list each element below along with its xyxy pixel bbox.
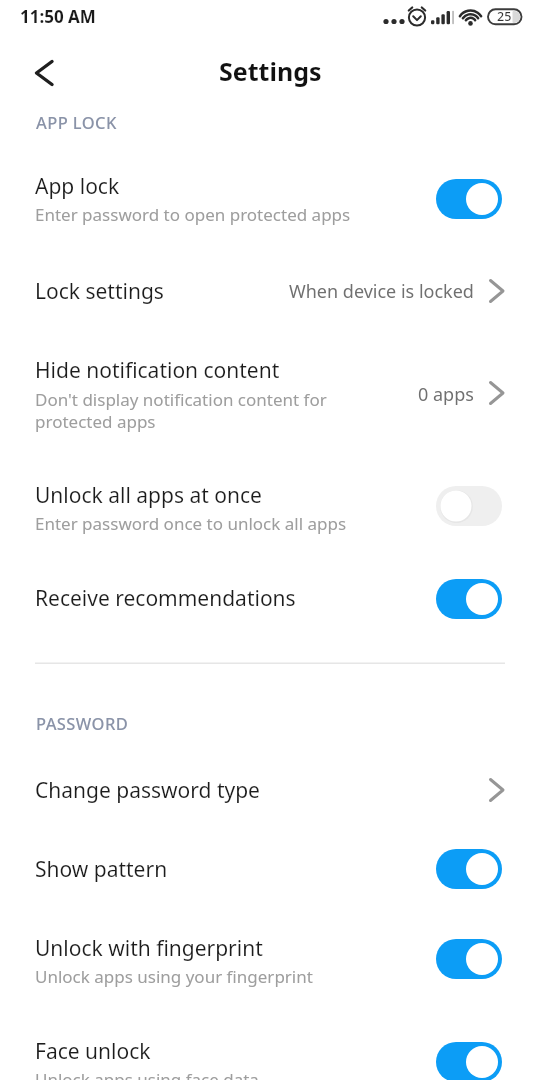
staticText: PASSWORD xyxy=(36,712,129,734)
staticText: Hide notification content xyxy=(35,356,280,385)
staticText: Show pattern xyxy=(35,855,168,884)
staticText: Settings xyxy=(219,54,322,88)
staticText: 11:50 AM xyxy=(20,5,96,28)
staticText: 25 xyxy=(497,8,512,25)
staticText: Face unlock xyxy=(35,1037,151,1066)
staticText: Unlock all apps at once xyxy=(35,481,262,510)
staticText: Receive recommendations xyxy=(35,584,296,613)
staticText: Don't display notification content for xyxy=(35,388,327,411)
staticText: When device is locked xyxy=(289,279,474,304)
staticText: APP LOCK xyxy=(36,111,117,133)
staticText: Unlock apps using your fingerprint xyxy=(35,965,313,988)
staticText: 0 apps xyxy=(418,382,474,407)
staticText: Change password type xyxy=(35,776,260,805)
staticText: protected apps xyxy=(35,410,156,433)
staticText: Unlock apps using face data xyxy=(35,1068,259,1080)
staticText: Unlock with fingerprint xyxy=(35,934,263,963)
staticText: Enter password once to unlock all apps xyxy=(35,512,347,535)
staticText: App lock xyxy=(35,172,120,201)
staticText: Enter password to open protected apps xyxy=(35,203,351,226)
staticText: Lock settings xyxy=(35,277,164,306)
